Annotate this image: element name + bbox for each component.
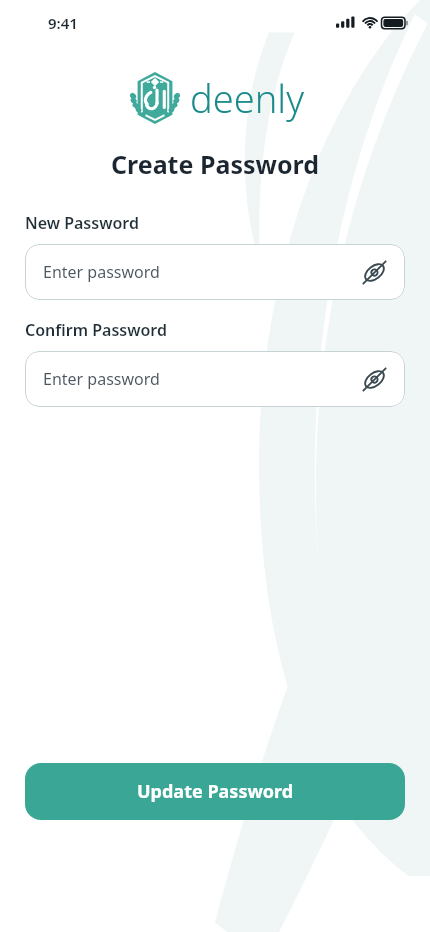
staticText: Create Password bbox=[0, 147, 430, 181]
button[interactable]: Enter password bbox=[25, 244, 405, 300]
staticText: Update Password bbox=[137, 779, 294, 804]
staticText: 9:41 bbox=[48, 13, 78, 33]
staticText: Enter password bbox=[43, 368, 160, 390]
button[interactable]: Show password bbox=[357, 362, 391, 396]
staticText: New Password bbox=[25, 212, 139, 234]
button[interactable]: Update Password bbox=[25, 763, 405, 820]
staticText: Confirm Password bbox=[25, 319, 167, 341]
staticText: deenly bbox=[190, 72, 304, 124]
staticText: Enter password bbox=[43, 261, 160, 283]
button[interactable]: Show password bbox=[357, 255, 391, 289]
button[interactable]: Enter password bbox=[25, 351, 405, 407]
